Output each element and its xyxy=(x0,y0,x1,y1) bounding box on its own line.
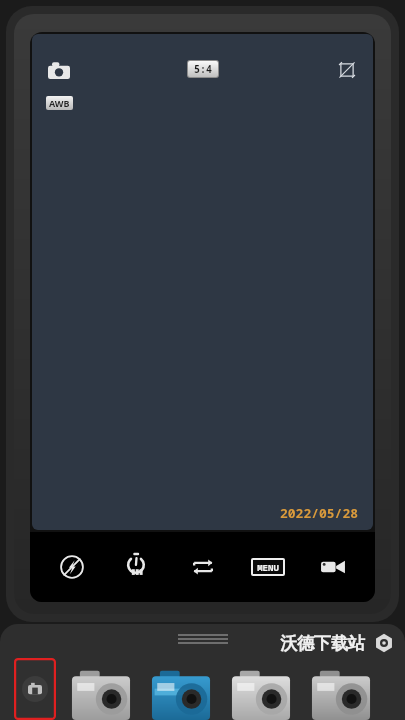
button[interactable]: Flash off xyxy=(49,544,95,590)
button[interactable]: Current camera xyxy=(14,658,56,720)
staticText: 5:4 xyxy=(194,62,212,76)
button[interactable]: MENU xyxy=(245,544,291,590)
button[interactable]: Framing guide xyxy=(335,58,359,82)
button[interactable]: 5:4 xyxy=(194,62,212,76)
staticText: MENU xyxy=(257,561,279,573)
staticText: AWB xyxy=(49,97,70,109)
button[interactable]: Switch mode xyxy=(180,544,226,590)
staticText: 2022/05/28 xyxy=(280,504,359,522)
button[interactable]: Camera model xyxy=(148,664,214,720)
button[interactable]: Self timer off xyxy=(114,544,160,590)
staticText: 沃德下载站 xyxy=(280,633,365,654)
button[interactable]: Camera model xyxy=(68,664,134,720)
button[interactable]: Camera model xyxy=(308,664,374,720)
button[interactable]: Shooting mode xyxy=(46,58,72,84)
button[interactable]: Video mode xyxy=(310,544,356,590)
button[interactable]: Camera model xyxy=(228,664,294,720)
button[interactable]: Settings xyxy=(373,632,395,654)
button[interactable]: AWB xyxy=(49,97,70,109)
